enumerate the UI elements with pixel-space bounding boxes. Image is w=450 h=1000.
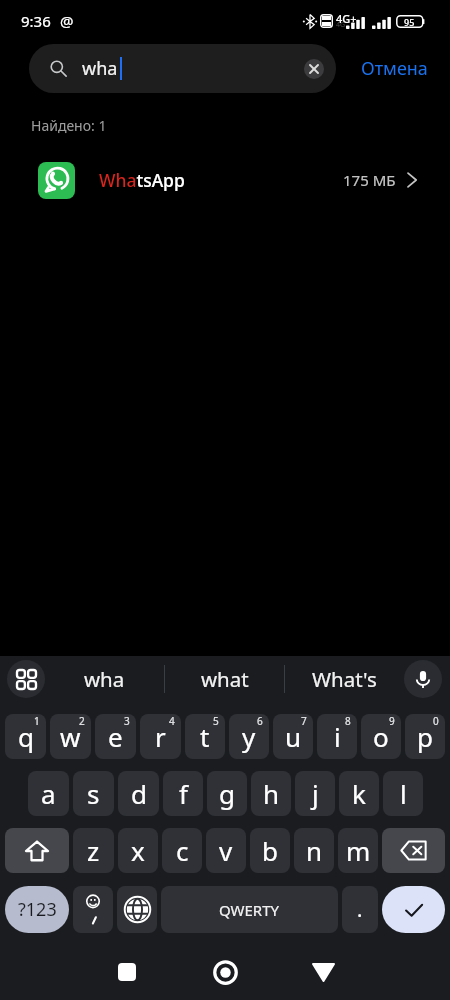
staticText: ?123 [18,897,57,922]
button[interactable]: Recent apps [77,939,177,1000]
button[interactable]: l [383,771,423,816]
staticText: x [131,833,145,868]
staticText: c [176,833,189,868]
button[interactable]: q [5,714,46,759]
button[interactable]: Backspace [382,828,445,873]
staticText: 1 [34,714,40,728]
button[interactable]: What's [285,656,404,702]
staticText: 4 [169,714,175,728]
button[interactable]: k [339,771,379,816]
button[interactable]: QWERTY [161,886,338,933]
staticText: g [219,776,235,811]
staticText: y [242,719,256,754]
button[interactable]: i [317,714,357,759]
staticText: 0 [433,714,439,728]
button[interactable]: WhatsApp [0,156,450,204]
button[interactable]: ?123 [5,886,69,933]
button[interactable]: Clear search [304,59,324,79]
button[interactable]: c [162,828,202,873]
staticText: 6 [257,714,263,728]
staticText: 8 [345,714,351,728]
staticText: wha [84,665,125,693]
staticText: q [18,719,34,754]
staticText: 95 [404,16,415,28]
button[interactable]: r [140,714,181,759]
button[interactable]: a [28,771,69,816]
staticText: Отмена [361,56,428,81]
button[interactable]: y [229,714,269,759]
button[interactable]: Shift [5,828,69,873]
staticText: z [87,833,100,868]
button[interactable]: Voice input [404,660,442,698]
button[interactable]: z [73,828,114,873]
staticText: p [417,719,433,754]
button[interactable]: Отмена [336,44,442,93]
staticText: r [155,719,166,754]
staticText: t [200,719,210,754]
button[interactable]: o [361,714,401,759]
staticText: k [352,776,366,811]
staticText: l [400,776,407,811]
button[interactable]: v [206,828,246,873]
staticText: 9 [389,714,395,728]
button[interactable]: Enter [382,886,445,933]
button[interactable]: d [118,771,159,816]
staticText: 3 [124,714,130,728]
staticText: what [201,665,249,693]
staticText: Найдено: 1 [31,116,107,135]
staticText: @ [60,11,74,31]
staticText: o [373,719,389,754]
button[interactable]: Change keyboard language [117,886,157,933]
staticText: 7 [301,714,307,728]
staticText: v [219,833,233,868]
button[interactable]: wha [45,656,164,702]
button[interactable]: b [250,828,290,873]
staticText: s [87,776,100,811]
staticText: 175 МБ [343,170,396,190]
staticText: a [41,776,56,811]
staticText: j [312,776,319,811]
button[interactable]: x [118,828,158,873]
staticText: 4G+ [336,11,357,26]
button[interactable]: h [251,771,291,816]
button[interactable]: m [338,828,378,873]
staticText: 5 [213,714,219,728]
staticText: i [334,719,341,754]
staticText: . [357,896,363,923]
button[interactable]: wha [29,44,336,93]
staticText: 2 [79,714,85,728]
staticText: 9:36 [21,11,51,31]
button[interactable]: p [405,714,445,759]
staticText: e [108,719,123,754]
staticText: n [306,833,323,868]
button[interactable]: f [163,771,203,816]
staticText: What's [312,665,377,693]
staticText: h [263,776,280,811]
button[interactable]: g [207,771,247,816]
button[interactable]: w [50,714,91,759]
button[interactable]: j [295,771,335,816]
button[interactable]: Emoji [73,886,113,933]
staticText: WhatsApp [99,168,185,192]
button[interactable]: . [342,886,378,933]
button[interactable]: t [185,714,225,759]
button[interactable]: s [73,771,114,816]
staticText: f [179,776,188,811]
button[interactable]: what [165,656,284,702]
staticText: QWERTY [219,900,280,920]
button[interactable]: e [95,714,136,759]
button[interactable]: Home [175,939,275,1000]
staticText: b [262,833,278,868]
staticText: w [60,719,81,754]
button[interactable]: n [294,828,334,873]
staticText: d [131,776,147,811]
button[interactable]: u [273,714,313,759]
staticText: wha [82,56,118,81]
staticText: m [346,833,371,868]
staticText: u [285,719,302,754]
button[interactable]: Keyboard toolbar [7,660,45,698]
button[interactable]: Back [273,939,373,1000]
staticText: 4G [336,20,346,30]
